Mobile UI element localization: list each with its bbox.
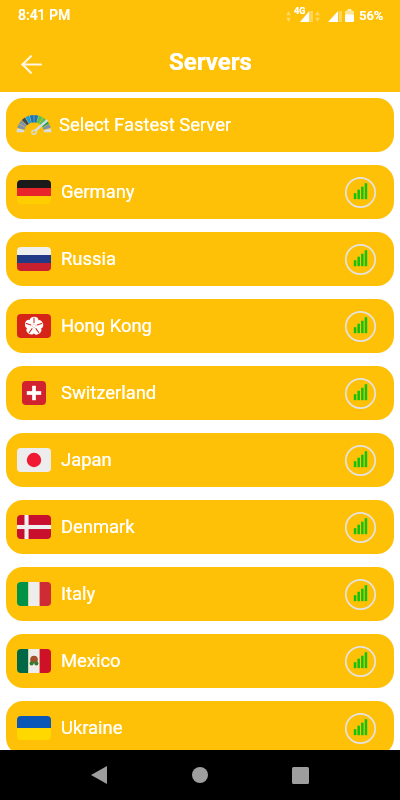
button[interactable]: Switzerland [6,366,394,420]
staticText: Hong Kong [61,315,152,337]
button[interactable]: Signal strength [345,311,376,342]
button[interactable]: Home [176,751,224,799]
staticText: Servers [169,48,252,76]
staticText: Russia [61,248,116,270]
button[interactable]: Mexico [6,634,394,688]
staticText: Denmark [61,516,135,538]
staticText: Germany [61,181,135,203]
staticText: 4G [294,6,306,17]
staticText: 8:41 PM [18,7,71,23]
button[interactable]: Signal strength [345,713,376,744]
staticText: 56% [359,8,384,23]
staticText: Italy [61,583,96,605]
staticText: Switzerland [61,382,157,404]
button[interactable]: Signal strength [345,445,376,476]
button[interactable]: Back [75,751,123,799]
button[interactable]: Italy [6,567,394,621]
staticText: Mexico [61,650,121,672]
button[interactable]: Germany [6,165,394,219]
staticText: Select Fastest Server [59,114,232,136]
button[interactable]: Signal strength [345,244,376,275]
button[interactable]: Russia [6,232,394,286]
button[interactable]: Signal strength [345,512,376,543]
staticText: Ukraine [61,717,123,739]
button[interactable]: Ukraine [6,701,394,755]
button[interactable]: Back [13,46,49,82]
button[interactable]: Denmark [6,500,394,554]
button[interactable]: Signal strength [345,579,376,610]
button[interactable]: Select Fastest Server [6,98,394,152]
button[interactable]: Recent apps [276,751,324,799]
staticText: Japan [61,449,112,471]
button[interactable]: Hong Kong [6,299,394,353]
button[interactable]: Signal strength [345,378,376,409]
button[interactable]: Signal strength [345,177,376,208]
button[interactable]: Signal strength [345,646,376,677]
button[interactable]: Japan [6,433,394,487]
